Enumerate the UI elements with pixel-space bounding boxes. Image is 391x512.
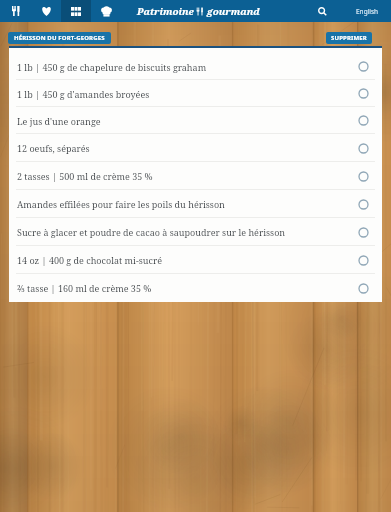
staticText: Le jus d'une orange [17,115,358,127]
button[interactable]: SUPPRIMER [326,32,372,44]
button[interactable]: Recipes [1,0,31,22]
staticText: ⅔ tasse | 160 ml de crème 35 % [17,282,358,294]
button[interactable]: English [356,7,379,16]
button[interactable]: ⅔ tasse | 160 ml de crème 35 % [9,274,382,302]
staticText: 14 oz | 400 g de chocolat mi-sucré [17,254,358,266]
button[interactable]: Amandes effilées pour faire les poils du… [9,190,382,218]
staticText: SUPPRIMER [331,34,367,42]
button[interactable]: Sucre à glacer et poudre de cacao à saup… [9,218,382,246]
staticText: Amandes effilées pour faire les poils du… [17,198,358,210]
button[interactable]: Favorites [31,0,61,22]
staticText: Sucre à glacer et poudre de cacao à saup… [17,226,358,238]
button[interactable]: 1 lb | 450 g de chapelure de biscuits gr… [9,53,382,80]
button[interactable]: Search [312,1,332,21]
button[interactable]: Le jus d'une orange [9,107,382,134]
staticText: 2 tasses | 500 ml de crème 35 % [17,170,358,182]
button[interactable]: 12 oeufs, séparés [9,134,382,162]
staticText: 1 lb | 450 g de chapelure de biscuits gr… [17,61,358,73]
staticText: 12 oeufs, séparés [17,142,358,154]
button[interactable]: Shopping list [61,0,91,22]
staticText: gourmand [207,5,260,18]
button[interactable]: 2 tasses | 500 ml de crème 35 % [9,162,382,190]
staticText: HÉRISSON DU FORT-GEORGES [14,34,105,42]
staticText: 1 lb | 450 g d'amandes broyées [17,88,358,100]
button[interactable]: Chef [91,0,121,22]
staticText: English [356,7,379,16]
button[interactable]: 14 oz | 400 g de chocolat mi-sucré [9,246,382,274]
staticText: Patrimoine [137,5,194,18]
button[interactable]: 1 lb | 450 g d'amandes broyées [9,80,382,107]
button[interactable]: HÉRISSON DU FORT-GEORGES [8,32,111,44]
